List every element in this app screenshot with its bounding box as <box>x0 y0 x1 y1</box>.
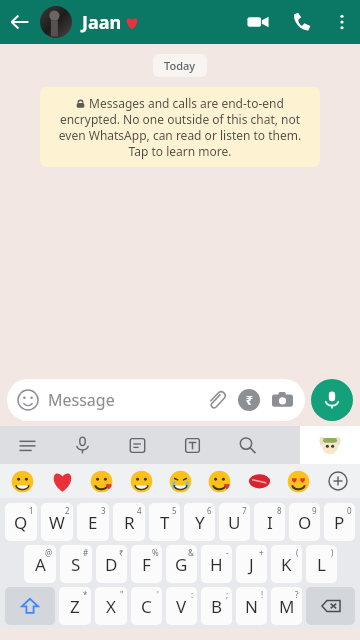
staticText: Y <box>195 511 205 534</box>
staticText: Messages and calls are end-to-end <box>89 95 284 111</box>
button[interactable]: Emoji <box>242 464 276 498</box>
button[interactable]: P <box>324 503 355 541</box>
button[interactable]: Emoji <box>281 464 315 498</box>
staticText: " <box>120 589 124 600</box>
button[interactable]: X <box>95 587 127 625</box>
button[interactable]: W <box>41 503 73 541</box>
staticText: 8 <box>277 505 282 516</box>
staticText: V <box>176 595 187 618</box>
staticText: 6 <box>207 505 212 516</box>
button[interactable]: Stickers <box>300 426 360 464</box>
button[interactable]: Emoji <box>84 464 118 498</box>
button[interactable]: Back <box>0 2 40 42</box>
button[interactable]: Messages and calls are end-to-end <box>40 87 320 167</box>
button[interactable]: Today <box>164 58 196 73</box>
staticText: P <box>334 511 345 534</box>
staticText: G <box>175 553 188 576</box>
button[interactable]: Emoji <box>163 464 197 498</box>
button[interactable]: U <box>219 503 250 541</box>
staticText: 3 <box>101 505 106 516</box>
staticText: J <box>249 553 254 576</box>
staticText: H <box>210 553 223 576</box>
button[interactable]: Backspace <box>306 587 355 625</box>
button[interactable]: E <box>77 503 109 541</box>
button[interactable]: Call <box>280 0 324 44</box>
button[interactable]: Z <box>59 587 91 625</box>
button[interactable]: N <box>236 587 267 625</box>
button[interactable]: Emoji <box>202 464 236 498</box>
staticText: Today <box>164 58 196 73</box>
button[interactable]: Q <box>5 503 37 541</box>
button[interactable]: Search <box>220 426 275 464</box>
staticText: 7 <box>242 505 247 516</box>
staticText: M <box>279 595 295 618</box>
button[interactable]: Profile photo <box>40 6 72 38</box>
button[interactable]: S <box>60 545 92 583</box>
button[interactable]: More emoji <box>321 464 355 498</box>
button[interactable]: R <box>113 503 145 541</box>
staticText: S <box>71 553 81 576</box>
staticText: % <box>152 547 159 558</box>
button[interactable]: M <box>271 587 302 625</box>
button[interactable]: Jaan <box>82 10 236 35</box>
staticText: - <box>226 547 229 558</box>
staticText: # <box>83 547 89 558</box>
staticText: 9 <box>312 505 317 516</box>
staticText: ₹ <box>119 547 124 558</box>
button[interactable]: F <box>131 545 162 583</box>
staticText: ) <box>331 547 334 558</box>
staticText: D <box>105 553 118 576</box>
button[interactable]: Message <box>7 379 305 421</box>
button[interactable]: O <box>289 503 320 541</box>
button[interactable]: D <box>96 545 127 583</box>
staticText: R <box>124 511 135 534</box>
button[interactable]: T <box>149 503 180 541</box>
button[interactable]: Emoji <box>5 464 39 498</box>
button[interactable]: Payment <box>237 388 261 412</box>
button[interactable]: Emoji <box>124 464 158 498</box>
button[interactable]: Attach <box>203 387 229 413</box>
staticText: 0 <box>347 505 352 516</box>
button[interactable]: Voice input <box>55 426 110 464</box>
staticText: W <box>49 511 65 534</box>
button[interactable]: Camera <box>269 387 295 413</box>
staticText: : <box>191 589 194 600</box>
staticText: ₹ <box>246 392 253 408</box>
staticText: @ <box>45 547 53 558</box>
button[interactable]: Y <box>184 503 215 541</box>
staticText: T <box>160 511 170 534</box>
button[interactable]: H <box>201 545 232 583</box>
button[interactable]: L <box>306 545 337 583</box>
staticText: & <box>188 547 194 558</box>
button[interactable]: C <box>131 587 162 625</box>
button[interactable]: J <box>236 545 267 583</box>
button[interactable]: Video call <box>236 0 280 44</box>
staticText: ? <box>295 589 299 600</box>
staticText: E <box>88 511 98 534</box>
staticText: encrypted. No one outside of this chat, … <box>50 111 310 159</box>
staticText: * <box>83 589 88 600</box>
staticText: F <box>142 553 151 576</box>
staticText: ' <box>157 589 159 600</box>
button[interactable]: Text <box>165 426 220 464</box>
staticText: 4 <box>137 505 142 516</box>
staticText: ; <box>226 589 229 600</box>
button[interactable]: I <box>254 503 285 541</box>
button[interactable]: Voice message <box>311 379 353 421</box>
button[interactable]: Emoji <box>45 464 79 498</box>
button[interactable]: B <box>201 587 232 625</box>
staticText: A <box>35 553 46 576</box>
button[interactable]: K <box>271 545 302 583</box>
staticText: Jaan <box>82 10 122 35</box>
button[interactable]: V <box>166 587 197 625</box>
button[interactable]: A <box>24 545 56 583</box>
staticText: 1 <box>29 505 34 516</box>
staticText: 5 <box>172 505 177 516</box>
button[interactable]: G <box>166 545 197 583</box>
button[interactable]: Clipboard <box>110 426 165 464</box>
button[interactable]: More options <box>324 4 360 40</box>
staticText: 2 <box>65 505 70 516</box>
button[interactable]: Menu <box>0 426 55 464</box>
button[interactable]: Shift <box>5 587 55 625</box>
staticText: C <box>141 595 152 618</box>
